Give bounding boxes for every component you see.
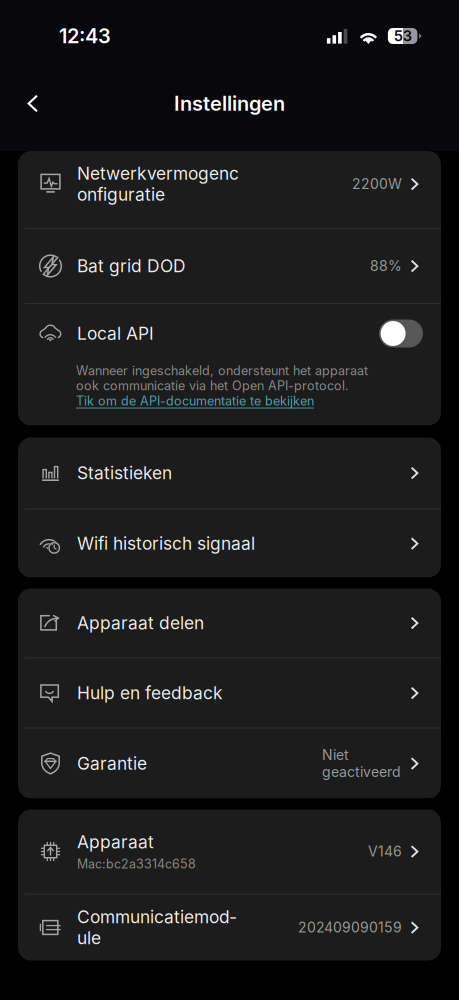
button[interactable]: Netwerkvermogenc onfiguratie xyxy=(18,151,441,228)
staticText: Statistieken xyxy=(77,462,172,483)
staticText: Instellingen xyxy=(174,91,285,116)
staticText: Wanneer ingeschakeld, ondersteunt het ap… xyxy=(76,363,368,393)
staticText: Local API xyxy=(77,323,154,344)
staticText: Communicatiemodule xyxy=(77,906,236,948)
button[interactable]: Local API xyxy=(379,319,423,347)
staticText: 202409090159 xyxy=(298,919,402,936)
staticText: Wifi historisch signaal xyxy=(77,533,255,554)
staticText: Apparaat xyxy=(77,831,154,852)
staticText: 2200W xyxy=(352,175,402,192)
button[interactable]: Statistieken xyxy=(18,437,441,508)
staticText: Bat grid DOD xyxy=(77,255,186,276)
staticText: Apparaat delen xyxy=(77,612,204,633)
button[interactable]: Communicatiemodule xyxy=(18,894,441,960)
staticText: Niet geactiveerd xyxy=(322,747,401,780)
button[interactable]: Hulp en feedback xyxy=(18,658,441,727)
button[interactable]: Garantie xyxy=(18,728,441,798)
staticText: V146 xyxy=(368,843,402,860)
staticText: Hulp en feedback xyxy=(77,682,223,703)
staticText: Mac:bc2a3314c658 xyxy=(77,856,196,871)
staticText: Garantie xyxy=(77,753,147,774)
button[interactable]: Bat grid DOD xyxy=(18,229,441,303)
button[interactable]: Wifi historisch signaal xyxy=(18,509,441,577)
staticText: Netwerkvermogenc onfiguratie xyxy=(77,163,239,205)
staticText: 88% xyxy=(370,257,402,274)
button[interactable]: Tik om de API-documentatie te bekijken xyxy=(76,393,314,408)
staticText: 53 xyxy=(394,27,412,45)
staticText: 12:43 xyxy=(59,24,111,48)
button[interactable]: Apparaat delen xyxy=(18,588,441,657)
button[interactable]: Back xyxy=(13,81,53,125)
button[interactable]: Apparaat xyxy=(18,809,441,893)
staticText: Tik om de API-documentatie te bekijken xyxy=(76,393,314,408)
